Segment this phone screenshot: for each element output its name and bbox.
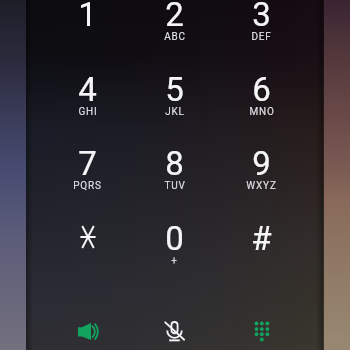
button[interactable]: 5 [131, 72, 218, 147]
button[interactable]: Mute [132, 305, 219, 350]
button[interactable] [44, 221, 131, 296]
button[interactable]: 2 [131, 0, 218, 72]
staticText: 1 [78, 0, 97, 34]
staticText: DEF [251, 31, 272, 43]
staticText: TUV [164, 180, 186, 192]
staticText: 9 [252, 144, 271, 183]
staticText: MNO [249, 106, 275, 118]
staticText: PQRS [73, 180, 102, 192]
button[interactable]: 1 [44, 0, 131, 72]
button[interactable]: 6 [218, 72, 305, 147]
button[interactable]: 9 [218, 146, 305, 221]
button[interactable]: 7 [44, 146, 131, 221]
staticText: + [171, 255, 178, 267]
staticText: 4 [78, 70, 97, 109]
staticText: # [251, 219, 272, 258]
staticText: 6 [252, 70, 271, 109]
staticText: 2 [165, 0, 184, 34]
staticText: 0 [165, 219, 184, 258]
staticText: WXYZ [246, 180, 277, 192]
button[interactable]: 3 [218, 0, 305, 72]
button[interactable]: Keypad [218, 305, 305, 350]
staticText: ABC [164, 31, 186, 43]
button[interactable]: # [218, 221, 305, 296]
button[interactable]: 8 [131, 146, 218, 221]
button[interactable]: 4 [44, 72, 131, 147]
staticText: JKL [165, 106, 185, 118]
button[interactable]: Speaker [44, 305, 131, 350]
staticText: 7 [78, 144, 97, 183]
staticText: 3 [252, 0, 271, 34]
staticText: 8 [165, 144, 184, 183]
staticText: 5 [165, 70, 184, 109]
staticText: GHI [78, 106, 98, 118]
button[interactable]: 0 [131, 221, 218, 296]
